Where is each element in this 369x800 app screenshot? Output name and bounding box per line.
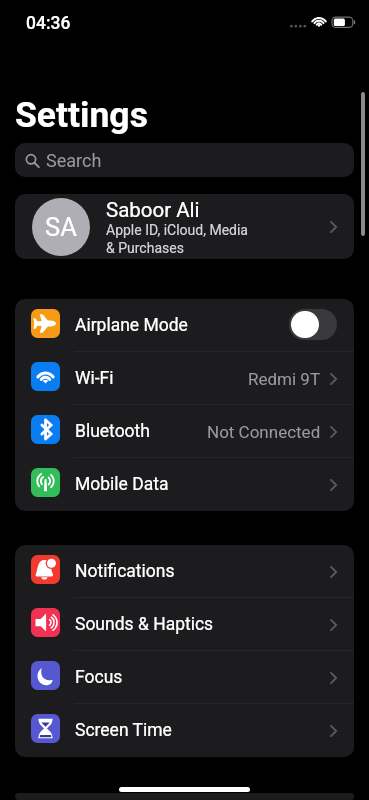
staticText: Mobile Data	[75, 474, 169, 495]
staticText: Redmi 9T	[248, 369, 321, 389]
button[interactable]: Mobile Data	[15, 458, 354, 511]
button[interactable]: Wi-Fi	[15, 352, 354, 405]
button[interactable]: SA	[15, 194, 354, 259]
button[interactable]: Sounds & Haptics	[15, 598, 354, 651]
button[interactable]: Bluetooth	[15, 405, 354, 458]
button[interactable]: Notifications	[15, 545, 354, 598]
staticText: Screen Time	[75, 720, 172, 741]
button[interactable]: Airplane Mode toggle	[289, 309, 337, 340]
button[interactable]: Screen Time	[15, 704, 354, 757]
button[interactable]: Focus	[15, 651, 354, 704]
staticText: Settings	[15, 94, 148, 136]
button[interactable]: Airplane Mode	[15, 299, 354, 352]
staticText: Focus	[75, 667, 123, 688]
staticText: Bluetooth	[75, 421, 150, 442]
staticText: Sounds & Haptics	[75, 614, 214, 635]
staticText: 04:36	[26, 13, 71, 34]
staticText: Notifications	[75, 561, 175, 582]
staticText: Wi-Fi	[75, 368, 114, 389]
staticText: Not Connected	[207, 422, 321, 442]
staticText: Apple ID, iCloud, Media & Purchases	[106, 222, 248, 256]
staticText: SA	[45, 212, 77, 242]
button[interactable]: Search	[15, 143, 354, 177]
staticText: Search	[46, 150, 102, 171]
staticText: Airplane Mode	[75, 315, 188, 336]
staticText: Saboor Ali	[106, 198, 200, 222]
